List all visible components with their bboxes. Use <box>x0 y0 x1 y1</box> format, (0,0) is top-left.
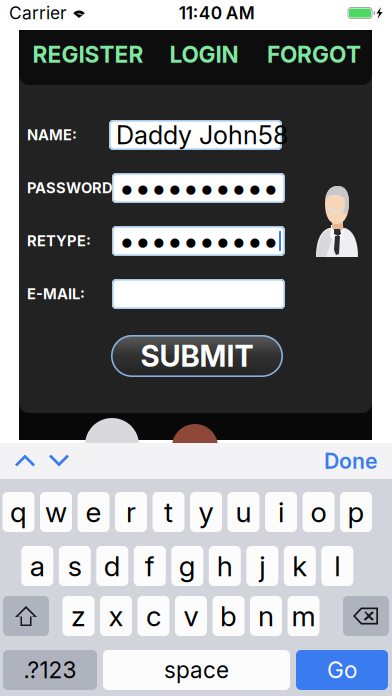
staticText: w <box>45 495 67 529</box>
staticText: m <box>291 599 315 633</box>
button[interactable]: t <box>152 492 184 532</box>
staticText: 11:40 AM <box>179 2 255 23</box>
button[interactable]: x <box>100 596 132 636</box>
staticText: o <box>310 495 326 529</box>
staticText: g <box>179 549 196 583</box>
staticText: h <box>217 549 233 583</box>
staticText: c <box>146 599 161 633</box>
button[interactable]: j <box>246 546 278 586</box>
button[interactable]: h <box>209 546 241 586</box>
button[interactable]: Daddy John58 <box>112 120 285 150</box>
button[interactable]: FORGOT <box>264 27 364 82</box>
staticText: t <box>164 495 173 529</box>
button[interactable]: s <box>59 546 91 586</box>
staticText: q <box>10 495 27 529</box>
button[interactable]: p <box>340 492 372 532</box>
button[interactable]: i <box>265 492 297 532</box>
button[interactable]: •••••••••• <box>112 173 285 203</box>
staticText: RETYPE: <box>27 232 91 250</box>
staticText: y <box>198 495 213 529</box>
button[interactable]: •••••••••• <box>112 226 285 256</box>
button[interactable]: q <box>2 492 34 532</box>
staticText: PASSWORD: <box>27 179 118 197</box>
button[interactable]: l <box>321 546 353 586</box>
button[interactable]: Go <box>296 650 388 690</box>
staticText: a <box>30 549 45 583</box>
button[interactable]: u <box>227 492 259 532</box>
button[interactable]: Previous field <box>8 443 42 479</box>
staticText: b <box>220 599 237 633</box>
staticText: p <box>347 495 364 529</box>
button[interactable]: y <box>190 492 222 532</box>
staticText: E-MAIL: <box>27 285 85 303</box>
staticText: space <box>164 656 229 684</box>
button[interactable]: REGISTER <box>28 27 148 82</box>
staticText: Done <box>324 448 378 474</box>
staticText: f <box>145 549 155 583</box>
button[interactable]: b <box>212 596 244 636</box>
button[interactable]: k <box>284 546 316 586</box>
button[interactable]: .?123 <box>3 650 97 690</box>
staticText: u <box>235 495 251 529</box>
button[interactable]: Done <box>324 443 378 479</box>
staticText: x <box>108 599 123 633</box>
staticText: l <box>334 549 340 583</box>
staticText: r <box>126 495 136 529</box>
staticText: Go <box>327 656 357 684</box>
button[interactable]: g <box>171 546 203 586</box>
staticText: n <box>258 599 274 633</box>
staticText: e <box>85 495 101 529</box>
button[interactable]: SUBMIT <box>111 335 283 377</box>
staticText: REGISTER <box>32 41 143 68</box>
button[interactable] <box>112 279 285 309</box>
staticText: d <box>104 549 121 583</box>
button[interactable]: c <box>137 596 169 636</box>
staticText: •••••••••• <box>119 170 279 206</box>
staticText: s <box>68 549 82 583</box>
staticText: i <box>278 495 284 529</box>
button[interactable]: r <box>115 492 147 532</box>
staticText: k <box>292 549 307 583</box>
button[interactable]: Delete <box>343 596 389 636</box>
button[interactable]: LOGIN <box>164 27 244 82</box>
staticText: NAME: <box>27 126 77 144</box>
button[interactable]: e <box>77 492 109 532</box>
button[interactable]: m <box>287 596 319 636</box>
button[interactable]: Next field <box>42 443 76 479</box>
staticText: .?123 <box>23 656 76 684</box>
staticText: Daddy John58 <box>116 120 288 150</box>
staticText: v <box>183 599 198 633</box>
button[interactable]: o <box>302 492 334 532</box>
button[interactable]: space <box>103 650 290 690</box>
staticText: z <box>71 599 86 633</box>
button[interactable]: Shift <box>3 596 49 636</box>
staticText: j <box>259 549 265 583</box>
staticText: Carrier <box>9 2 67 23</box>
button[interactable]: z <box>62 596 94 636</box>
button[interactable]: n <box>250 596 282 636</box>
staticText: LOGIN <box>169 41 238 68</box>
button[interactable]: d <box>96 546 128 586</box>
staticText: •••••••••• <box>119 223 279 259</box>
button[interactable]: a <box>21 546 53 586</box>
staticText: FORGOT <box>267 41 361 68</box>
button[interactable]: v <box>175 596 207 636</box>
staticText: SUBMIT <box>140 338 253 374</box>
button[interactable]: f <box>134 546 166 586</box>
button[interactable]: w <box>40 492 72 532</box>
